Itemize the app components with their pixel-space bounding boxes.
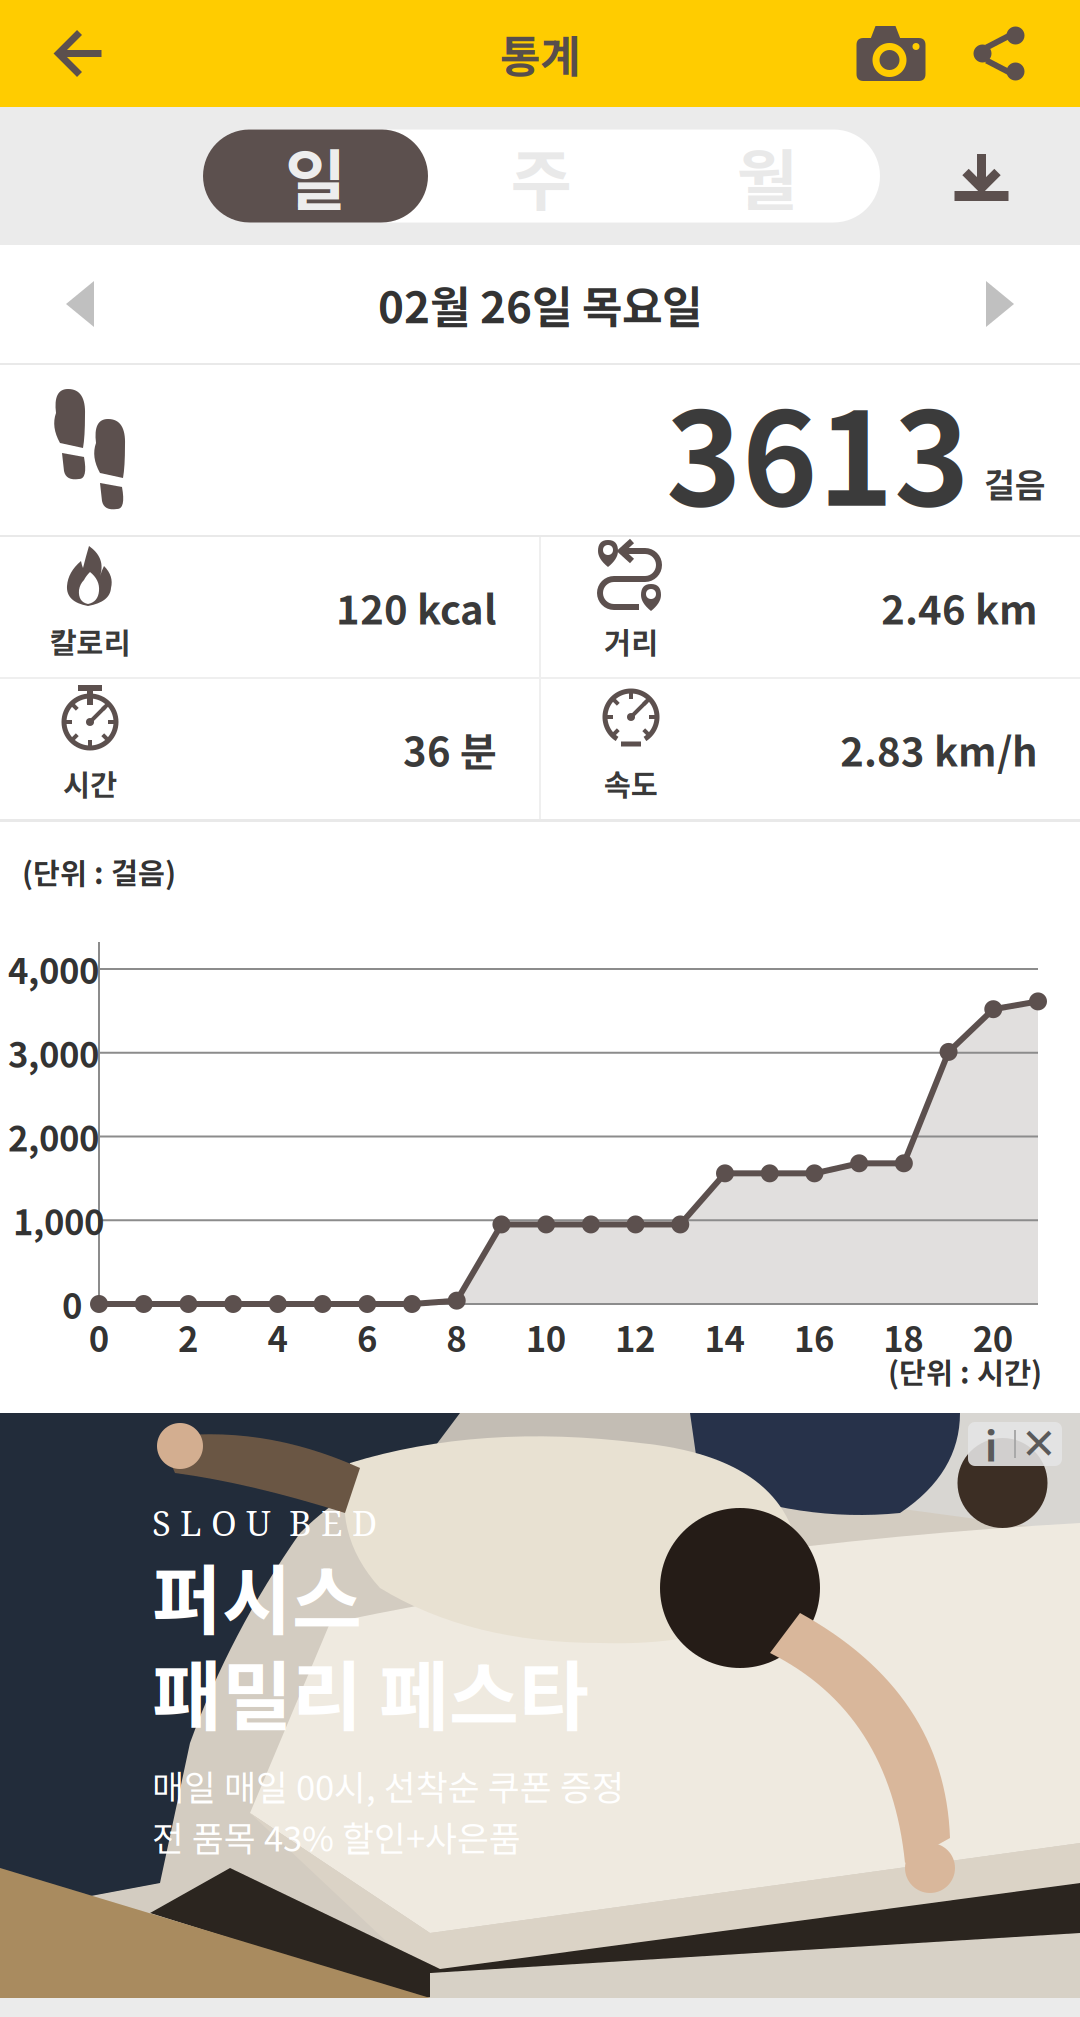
staticText: 칼로리 bbox=[49, 620, 130, 662]
button[interactable]: 주 bbox=[428, 129, 654, 222]
staticText: 6 bbox=[357, 1312, 377, 1362]
staticText: 0 bbox=[89, 1312, 109, 1362]
staticText: ✕ bbox=[1021, 1419, 1057, 1469]
staticText: 2,000 bbox=[8, 1111, 99, 1162]
staticText: 1,000 bbox=[13, 1195, 104, 1245]
staticText: 통계 bbox=[500, 22, 580, 85]
staticText: 2.46 km bbox=[881, 578, 1038, 636]
staticText: 속도 bbox=[604, 762, 658, 804]
staticText: 4,000 bbox=[8, 944, 99, 994]
button[interactable]: Download bbox=[922, 129, 1042, 222]
staticText: 주 bbox=[510, 128, 571, 224]
button[interactable]: Previous day bbox=[0, 245, 160, 363]
staticText: 2.83 km/h bbox=[840, 720, 1038, 778]
staticText: 매일 매일 00시, 선착순 쿠폰 증정 bbox=[152, 1760, 624, 1811]
staticText: 걸음 bbox=[984, 459, 1046, 507]
button[interactable]: Camera bbox=[836, 0, 946, 107]
button[interactable]: Share bbox=[946, 0, 1052, 107]
staticText: 4 bbox=[267, 1312, 287, 1362]
staticText: 2 bbox=[178, 1312, 198, 1362]
staticText: 36 분 bbox=[403, 720, 497, 778]
staticText: 18 bbox=[883, 1312, 923, 1362]
staticText: 전 품목 43% 할인+사은품 bbox=[152, 1811, 521, 1862]
staticText: i bbox=[985, 1415, 997, 1473]
staticText: S L O U B E D bbox=[152, 1499, 377, 1546]
staticText: 일 bbox=[285, 128, 346, 224]
staticText: 0 bbox=[62, 1279, 82, 1329]
staticText: 02월 26일 목요일 bbox=[378, 272, 702, 336]
staticText: 3613 bbox=[666, 357, 970, 543]
staticText: 월 bbox=[736, 128, 797, 224]
staticText: 120 kcal bbox=[336, 578, 497, 636]
staticText: 20 bbox=[973, 1312, 1013, 1362]
staticText: 거리 bbox=[604, 620, 658, 662]
button[interactable]: S L O U B E D bbox=[0, 1413, 1080, 1998]
staticText: (단위 : 걸음) bbox=[22, 850, 176, 893]
staticText: 8 bbox=[446, 1312, 466, 1362]
button[interactable]: Ad info and close bbox=[968, 1422, 1062, 1466]
staticText: 시간 bbox=[63, 762, 117, 804]
staticText: 16 bbox=[794, 1312, 834, 1362]
staticText: 패밀리 페스타 bbox=[152, 1636, 589, 1746]
button[interactable]: 일 bbox=[203, 129, 428, 222]
button[interactable]: Next day bbox=[920, 245, 1080, 363]
staticText: 12 bbox=[615, 1312, 655, 1362]
staticText: 퍼시스 bbox=[152, 1540, 362, 1650]
staticText: (단위 : 시간) bbox=[888, 1350, 1042, 1392]
staticText: 10 bbox=[526, 1312, 566, 1362]
button[interactable]: 월 bbox=[654, 129, 880, 222]
button[interactable]: Back bbox=[0, 0, 160, 107]
staticText: 14 bbox=[704, 1312, 744, 1362]
staticText: 3,000 bbox=[8, 1028, 99, 1078]
